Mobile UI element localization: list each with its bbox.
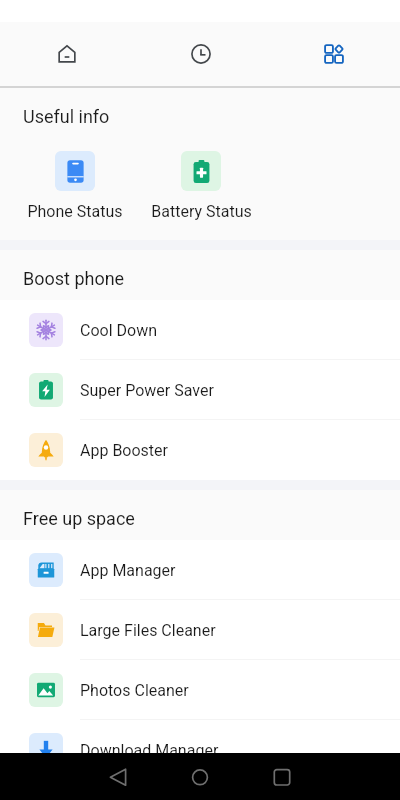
staticText: Large Files Cleaner xyxy=(80,621,216,640)
staticText: App Booster xyxy=(80,441,168,460)
button[interactable]: Super Power Saver xyxy=(0,360,400,420)
staticText: Battery Status xyxy=(151,202,252,221)
staticText: Phone Status xyxy=(27,202,123,221)
button[interactable]: App Manager xyxy=(0,540,400,600)
staticText: Useful info xyxy=(23,106,110,127)
button[interactable]: Recent apps xyxy=(266,761,298,793)
button[interactable]: App Booster xyxy=(0,420,400,480)
staticText: Boost phone xyxy=(23,268,125,289)
button[interactable]: Back xyxy=(102,761,134,793)
staticText: Free up space xyxy=(23,508,135,529)
button[interactable]: Cool Down xyxy=(0,300,400,360)
button[interactable]: Recent xyxy=(134,22,267,86)
button[interactable]: Large Files Cleaner xyxy=(0,600,400,660)
button[interactable]: Phone Status xyxy=(12,138,138,221)
staticText: Download Manager xyxy=(80,741,219,760)
button[interactable]: Download Manager xyxy=(0,720,400,780)
staticText: Photos Cleaner xyxy=(80,681,189,700)
button[interactable]: Battery Status xyxy=(138,138,264,221)
button[interactable]: Photos Cleaner xyxy=(0,660,400,720)
button[interactable]: Home xyxy=(0,22,134,86)
staticText: App Manager xyxy=(80,561,176,580)
button[interactable]: Toolbox xyxy=(267,22,400,86)
staticText: Super Power Saver xyxy=(80,381,214,400)
button[interactable]: Home xyxy=(184,761,216,793)
staticText: Cool Down xyxy=(80,321,158,340)
